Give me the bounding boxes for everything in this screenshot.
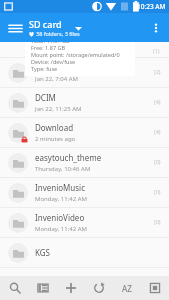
staticText: 10:23 AM bbox=[137, 2, 166, 11]
staticText: (2) bbox=[154, 68, 161, 75]
button[interactable]: Select bbox=[141, 276, 169, 300]
staticText: Jan 22, 11:25 AM bbox=[35, 105, 82, 113]
staticText: AZ bbox=[122, 283, 132, 294]
button[interactable]: Refresh bbox=[85, 276, 113, 300]
staticText: Total: 11.31 GB bbox=[31, 42, 70, 44]
button[interactable]: List view bbox=[29, 276, 57, 300]
staticText: (0) bbox=[154, 188, 161, 195]
button[interactable]: data bbox=[0, 58, 169, 88]
button[interactable]: easytouch_theme bbox=[0, 148, 169, 178]
staticText: Download bbox=[35, 122, 74, 133]
staticText: (1) bbox=[153, 47, 160, 54]
staticText: Free: 1.87 GB bbox=[31, 44, 66, 51]
button[interactable]: Sort A to Z bbox=[113, 276, 141, 300]
staticText: (0) bbox=[154, 158, 161, 165]
staticText: easytouch_theme bbox=[35, 152, 102, 163]
staticText: 38 folders, 3 files bbox=[36, 30, 80, 37]
staticText: Type: fuse bbox=[31, 65, 58, 72]
button[interactable]: KGS bbox=[0, 238, 169, 268]
staticText: (4) bbox=[154, 128, 161, 135]
staticText: (4) bbox=[154, 98, 161, 105]
staticText: SD card bbox=[29, 18, 62, 30]
staticText: Device: /dev/fuse bbox=[31, 58, 76, 65]
button[interactable]: Change storage bbox=[70, 20, 86, 36]
staticText: data bbox=[35, 62, 52, 73]
staticText: Jan 22, 7:04 AM bbox=[35, 75, 79, 83]
staticText: InvenioVideo bbox=[35, 212, 85, 223]
staticText: InvenioMusic bbox=[35, 182, 86, 193]
staticText: Monday, 11:42 AM bbox=[35, 225, 87, 233]
button[interactable]: SD card bbox=[29, 18, 80, 37]
button[interactable]: Download bbox=[0, 118, 169, 148]
staticText: DCIM bbox=[35, 92, 56, 103]
button[interactable]: InvenioMusic bbox=[0, 178, 169, 208]
button[interactable]: DCIM bbox=[0, 88, 169, 118]
staticText: 2 minutes ago bbox=[35, 135, 76, 143]
staticText: KGS bbox=[35, 247, 51, 258]
button[interactable]: Search bbox=[0, 276, 29, 300]
button[interactable]: Open navigation drawer bbox=[4, 17, 26, 39]
button[interactable]: SD card bbox=[25, 42, 135, 76]
button[interactable]: Add bbox=[57, 276, 85, 300]
staticText: Monday, 11:42 AM bbox=[35, 195, 87, 203]
button[interactable]: InvenioVideo bbox=[0, 208, 169, 238]
button[interactable]: More options bbox=[145, 17, 167, 39]
staticText: (0) bbox=[154, 218, 161, 225]
staticText: Thursday, 10:46 AM bbox=[35, 165, 91, 173]
staticText: Mount point: /storage/emulated/0 bbox=[31, 51, 120, 58]
